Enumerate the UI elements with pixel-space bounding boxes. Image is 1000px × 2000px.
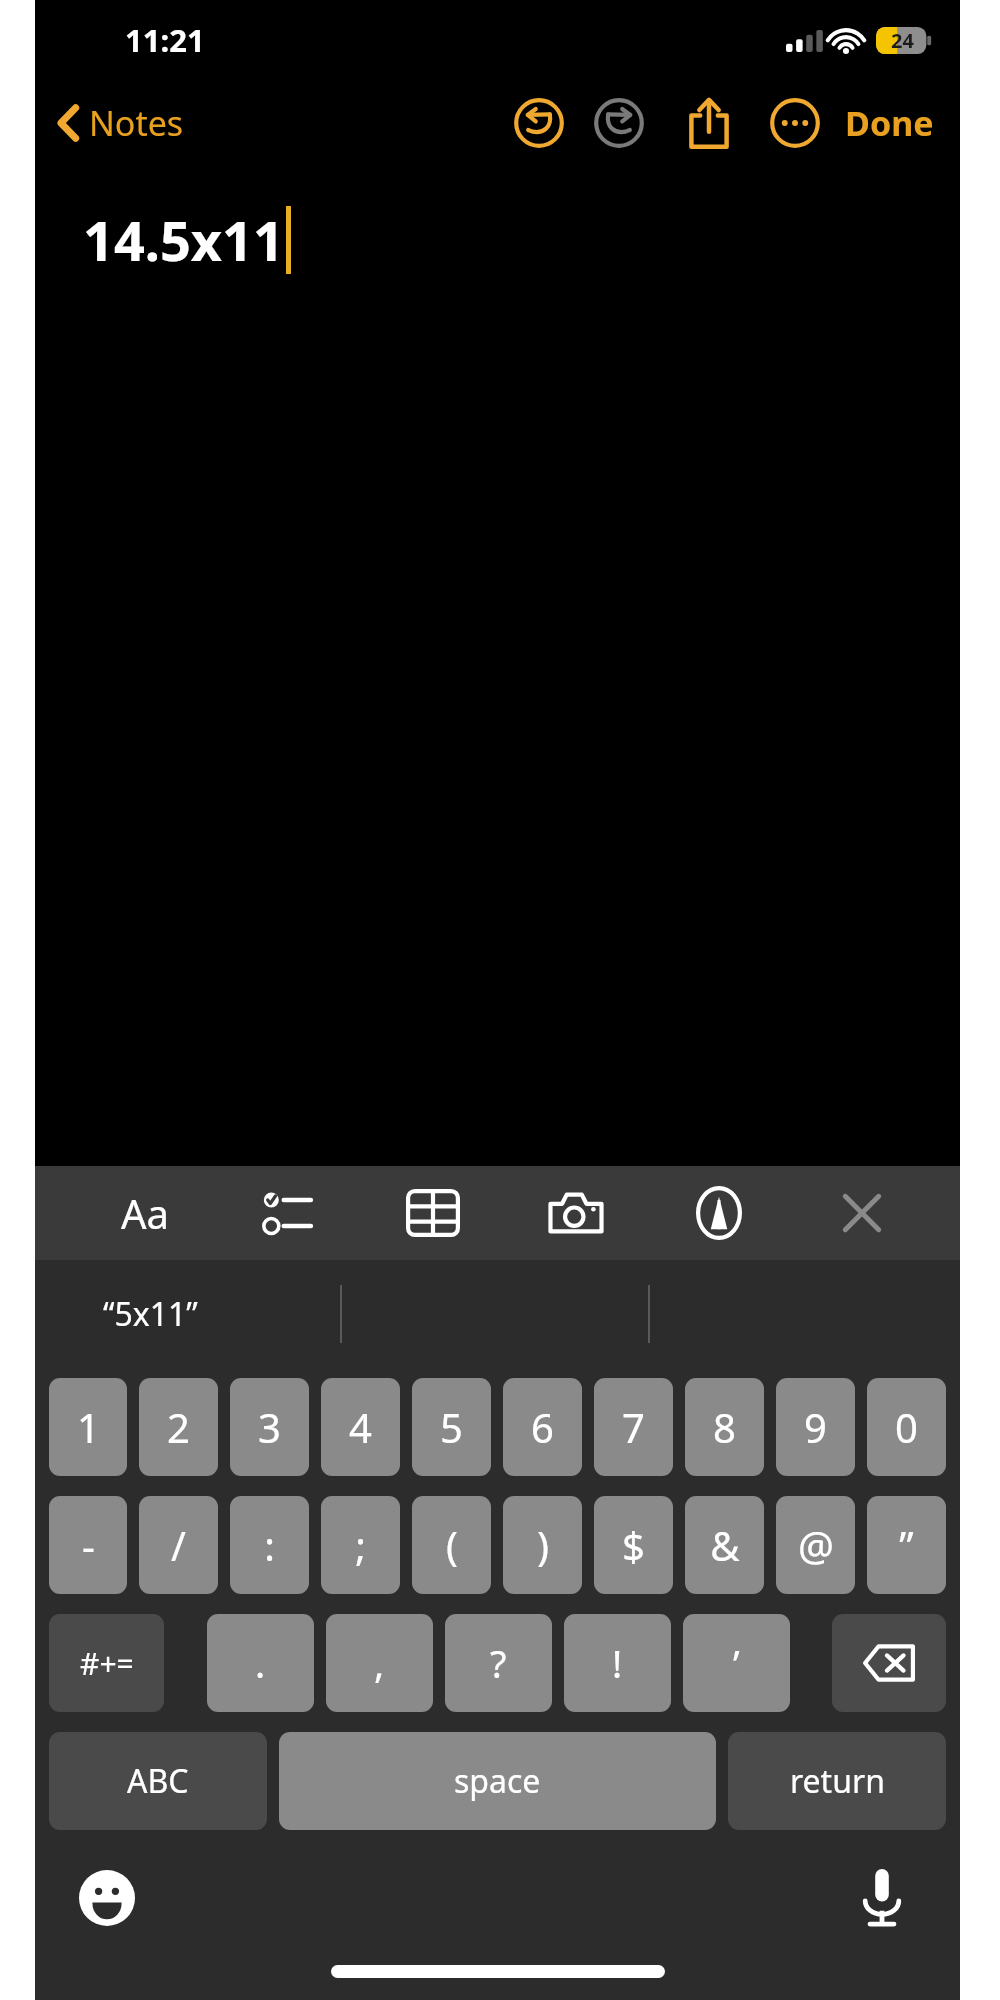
button[interactable]: Checklist [243, 1168, 335, 1258]
staticText: @ [798, 1518, 834, 1572]
staticText: & [710, 1518, 740, 1572]
staticText: ABC [127, 1759, 189, 1803]
button[interactable]: Done [837, 94, 942, 152]
button[interactable]: : [230, 1496, 309, 1594]
staticText: return [790, 1759, 885, 1803]
button[interactable]: Dictation [844, 1860, 920, 1936]
button[interactable]: 2 [139, 1378, 218, 1476]
staticText: - [82, 1518, 95, 1572]
button[interactable]: Table [387, 1168, 479, 1258]
staticText: ! [612, 1637, 623, 1689]
button[interactable]: Notes [49, 94, 192, 152]
staticText: ? [490, 1637, 507, 1689]
button[interactable]: ( [412, 1496, 491, 1594]
staticText: 3 [258, 1400, 281, 1454]
button[interactable]: Emoji [69, 1860, 145, 1936]
button[interactable]: ) [503, 1496, 582, 1594]
staticText: ” [899, 1518, 914, 1572]
button[interactable]: “5x11” [103, 1292, 198, 1336]
button[interactable]: Share [673, 87, 745, 159]
staticText: 2 [167, 1400, 190, 1454]
staticText: ( [446, 1518, 458, 1572]
button[interactable]: Camera [530, 1168, 622, 1258]
button[interactable]: 4 [321, 1378, 400, 1476]
staticText: ) [537, 1518, 549, 1572]
button[interactable]: ! [564, 1614, 671, 1712]
button[interactable]: 3 [230, 1378, 309, 1476]
button[interactable]: 8 [685, 1378, 764, 1476]
button[interactable]: Backspace [832, 1614, 946, 1712]
button[interactable]: - [49, 1496, 127, 1594]
button[interactable]: @ [776, 1496, 855, 1594]
button[interactable]: . [207, 1614, 314, 1712]
button[interactable]: ” [867, 1496, 946, 1594]
staticText: ’ [733, 1637, 740, 1689]
button[interactable]: ’ [683, 1614, 790, 1712]
staticText: ; [355, 1518, 366, 1572]
staticText: $ [622, 1518, 645, 1572]
button[interactable]: return [728, 1732, 946, 1830]
button[interactable]: Undo [503, 87, 575, 159]
staticText: 7 [622, 1400, 645, 1454]
button[interactable]: 1 [49, 1378, 127, 1476]
button[interactable]: ; [321, 1496, 400, 1594]
button[interactable]: 7 [594, 1378, 673, 1476]
button[interactable]: $ [594, 1496, 673, 1594]
staticText: 8 [713, 1400, 736, 1454]
staticText: . [255, 1637, 266, 1689]
staticText: #+= [80, 1643, 134, 1684]
staticText: , [374, 1637, 385, 1689]
button[interactable]: 9 [776, 1378, 855, 1476]
button[interactable]: ABC [49, 1732, 267, 1830]
staticText: 4 [349, 1400, 372, 1454]
button[interactable]: 0 [867, 1378, 946, 1476]
button[interactable]: #+= [49, 1614, 164, 1712]
button[interactable]: ? [445, 1614, 552, 1712]
staticText: 11:21 [125, 19, 205, 61]
staticText: 24 [891, 27, 914, 54]
button[interactable]: More options [759, 87, 831, 159]
staticText: space [454, 1759, 541, 1803]
button[interactable]: 6 [503, 1378, 582, 1476]
staticText: Aa [121, 1186, 169, 1240]
staticText: / [171, 1518, 186, 1572]
button[interactable]: 14.5x11 [35, 165, 960, 1166]
button[interactable]: Redo [583, 87, 655, 159]
staticText: 14.5x11 [83, 203, 284, 277]
button[interactable]: space [279, 1732, 716, 1830]
staticText: Done [845, 100, 934, 146]
button[interactable]: 5 [412, 1378, 491, 1476]
button[interactable]: , [326, 1614, 433, 1712]
button[interactable]: Close keyboard [816, 1168, 908, 1258]
button[interactable]: & [685, 1496, 764, 1594]
staticText: : [264, 1518, 275, 1572]
button[interactable]: / [139, 1496, 218, 1594]
button[interactable]: Markup [673, 1168, 765, 1258]
staticText: 5 [440, 1400, 463, 1454]
staticText: 0 [895, 1400, 918, 1454]
staticText: 6 [531, 1400, 554, 1454]
staticText: 9 [804, 1400, 827, 1454]
button[interactable]: Text format [99, 1168, 191, 1258]
staticText: Notes [89, 100, 184, 146]
staticText: 1 [77, 1400, 100, 1454]
